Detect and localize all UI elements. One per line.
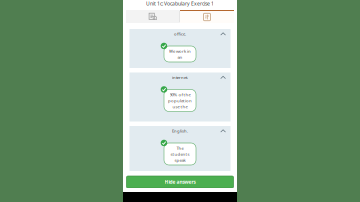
staticText: population bbox=[168, 98, 192, 103]
staticText: internet. bbox=[172, 75, 188, 80]
button[interactable]: Hide answers bbox=[126, 176, 233, 188]
staticText: an bbox=[177, 54, 182, 60]
staticText: Unit 1c: Vocabulary Exercise 1 bbox=[146, 0, 214, 7]
staticText: The bbox=[176, 145, 183, 151]
button[interactable]: English. bbox=[129, 126, 230, 171]
staticText: use the bbox=[172, 104, 187, 109]
staticText: English. bbox=[172, 128, 188, 134]
button[interactable]: office. bbox=[129, 29, 230, 68]
staticText: students bbox=[170, 151, 189, 157]
staticText: office. bbox=[174, 31, 186, 37]
staticText: 90% of the bbox=[169, 92, 190, 97]
button[interactable]: internet. bbox=[129, 72, 230, 121]
button[interactable]: Exercises bbox=[180, 10, 234, 23]
staticText: We work in bbox=[169, 48, 191, 54]
staticText: speak bbox=[174, 157, 185, 163]
staticText: Hide answers bbox=[164, 179, 195, 185]
button[interactable]: Reading bbox=[126, 10, 180, 23]
